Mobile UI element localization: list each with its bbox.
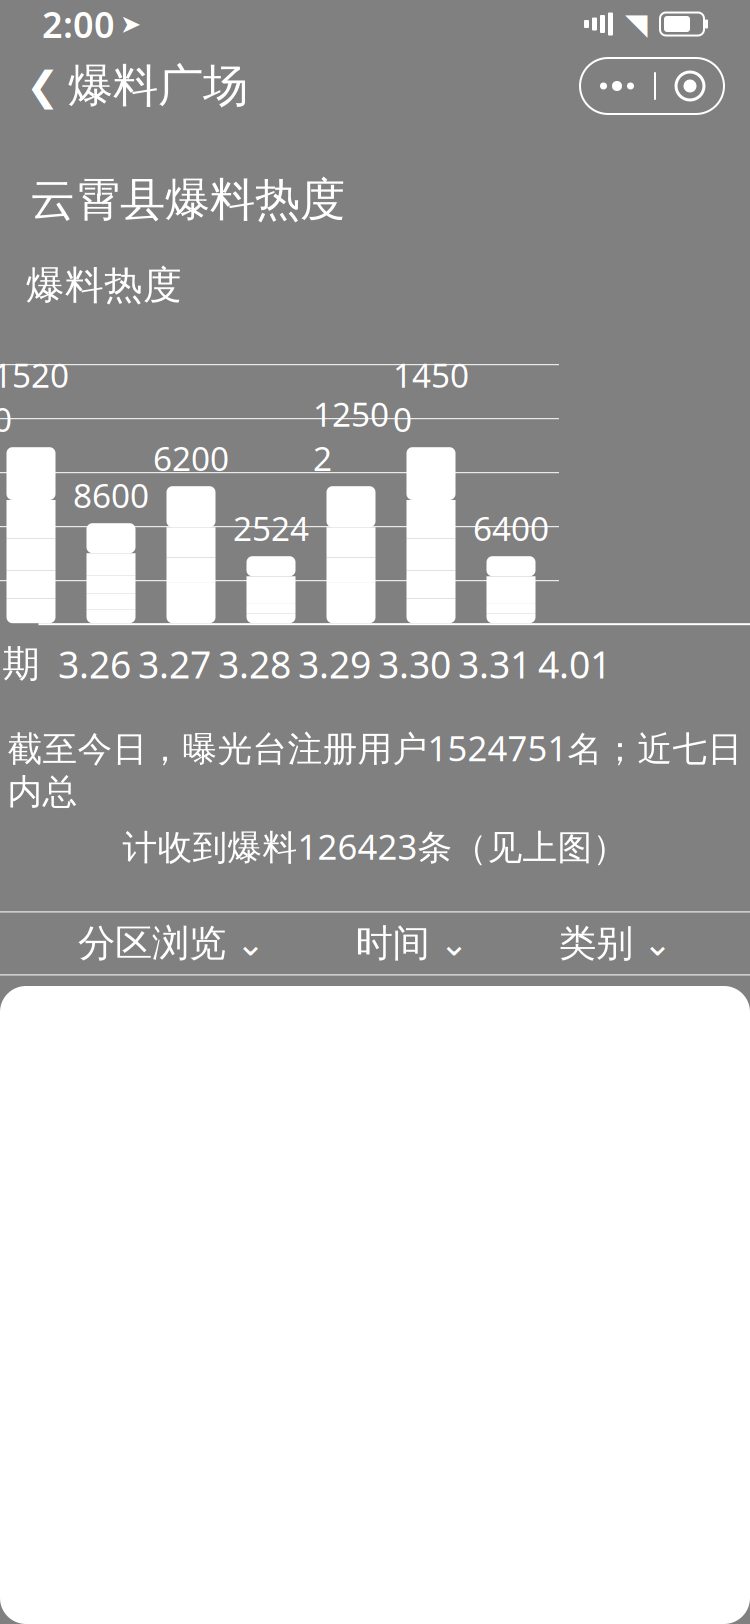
- staticText: 6200: [153, 436, 229, 480]
- staticText: ◥: [625, 7, 648, 41]
- staticText: ❮: [26, 63, 60, 109]
- staticText: ➤: [120, 10, 141, 38]
- staticText: 分区浏览: [78, 920, 226, 966]
- staticText: 3.31: [458, 639, 531, 689]
- staticText: 时间: [355, 920, 429, 966]
- staticText: 2524: [233, 506, 309, 550]
- staticText: 4.01: [538, 639, 611, 689]
- staticText: 日期: [0, 641, 39, 687]
- button[interactable]: 更多: [580, 58, 724, 114]
- staticText: 12502: [313, 392, 389, 480]
- staticText: 3.29: [298, 639, 371, 689]
- staticText: 爆料热度: [26, 262, 182, 309]
- button[interactable]: ❮: [26, 52, 248, 120]
- staticText: 8600: [73, 473, 149, 517]
- staticText: 3.26: [58, 639, 131, 689]
- staticText: ⌄: [643, 924, 672, 963]
- staticText: 15200: [0, 353, 69, 441]
- staticText: ⌄: [236, 924, 265, 963]
- staticText: 3.30: [378, 639, 451, 689]
- staticText: 6400: [473, 506, 549, 550]
- staticText: 3.27: [138, 639, 211, 689]
- button[interactable]: 分区浏览: [78, 912, 265, 974]
- staticText: 截至今日，曝光台注册用户1524751名；近七日内总: [7, 725, 742, 813]
- button[interactable]: 类别: [559, 912, 672, 974]
- staticText: 爆料广场: [68, 58, 248, 114]
- staticText: 2:00: [42, 0, 115, 48]
- staticText: 类别: [559, 920, 633, 966]
- staticText: 计收到爆料126423条（见上图）: [122, 823, 627, 869]
- staticText: ⌄: [439, 924, 468, 963]
- staticText: 云霄县爆料热度: [30, 172, 345, 228]
- staticText: 14500: [393, 353, 469, 441]
- staticText: 3.28: [218, 639, 291, 689]
- button[interactable]: 时间: [355, 912, 468, 974]
